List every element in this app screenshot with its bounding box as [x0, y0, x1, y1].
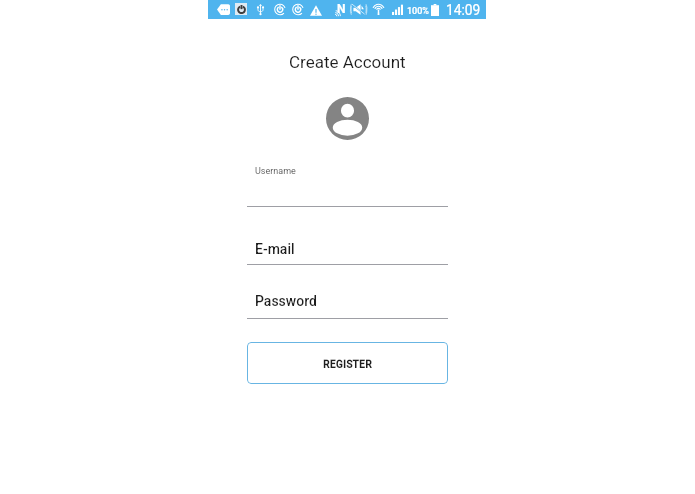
button[interactable]: Profile picture — [326, 97, 369, 140]
staticText: REGISTER — [323, 359, 372, 371]
staticText: E-mail — [255, 241, 295, 257]
staticText: Create Account — [289, 52, 406, 72]
button[interactable]: E-mail — [247, 218, 448, 266]
staticText: Username — [255, 166, 296, 177]
button[interactable]: REGISTER — [247, 342, 448, 384]
staticText: 14:09 — [446, 2, 481, 18]
staticText: Password — [255, 293, 317, 309]
staticText: 100% — [407, 6, 429, 17]
button[interactable]: Password — [247, 272, 448, 319]
button[interactable]: Create Account — [208, 50, 486, 74]
staticText: N — [337, 2, 346, 14]
button[interactable]: Username — [247, 160, 448, 208]
